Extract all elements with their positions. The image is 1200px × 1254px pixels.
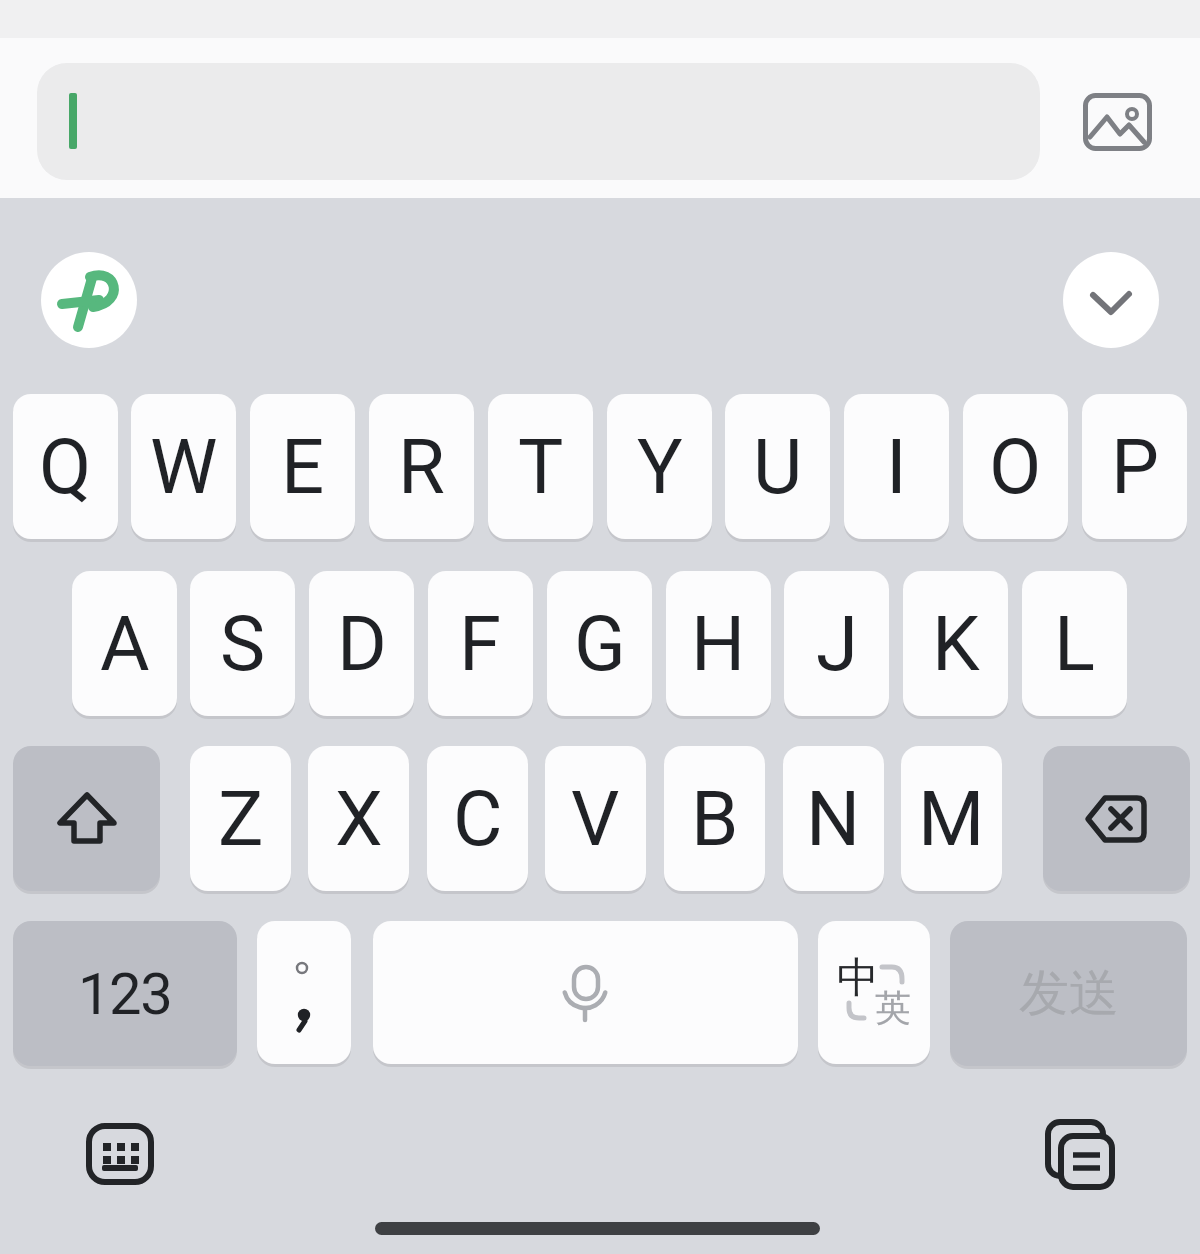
staticText: R [398,422,445,511]
staticText: 123 [78,960,172,1028]
staticText: E [281,422,325,511]
button[interactable]: 发送 [950,921,1187,1066]
staticText: F [459,599,502,688]
button[interactable]: Y [607,394,712,539]
staticText: A [100,599,150,688]
staticText: C [453,774,503,863]
button[interactable] [1044,1118,1116,1190]
button[interactable]: F [428,571,533,716]
button[interactable] [86,1123,154,1185]
button[interactable] [373,921,798,1064]
staticText: T [518,422,564,511]
staticText: U [753,422,803,511]
button[interactable]: H [666,571,771,716]
button[interactable]: K [903,571,1008,716]
staticText: W [150,422,218,511]
staticText: P [1111,422,1159,511]
button[interactable]: N [783,746,884,891]
staticText: I [886,422,907,511]
staticText: K [932,599,980,688]
staticText: H [691,599,746,688]
staticText: Y [637,422,683,511]
button[interactable]: C [427,746,528,891]
button[interactable]: B [664,746,765,891]
button[interactable] [41,252,137,348]
button[interactable] [257,921,351,1064]
staticText: 发送 [1019,962,1119,1025]
button[interactable]: P [1082,394,1187,539]
button[interactable] [1063,252,1159,348]
button[interactable]: V [545,746,646,891]
staticText: G [574,599,626,688]
staticText: V [571,774,620,863]
button[interactable] [1083,93,1153,153]
button[interactable]: Z [190,746,291,891]
staticText: Z [218,774,264,863]
staticText: B [691,774,739,863]
button[interactable]: R [369,394,474,539]
button[interactable]: W [131,394,236,539]
button[interactable]: O [963,394,1068,539]
button[interactable]: 123 [13,921,237,1066]
button[interactable]: S [190,571,295,716]
button[interactable]: E [250,394,355,539]
button[interactable] [1043,746,1190,891]
staticText: 英 [875,985,911,1030]
button[interactable] [13,746,160,891]
button[interactable] [37,63,1040,180]
button[interactable]: G [547,571,652,716]
button[interactable]: U [725,394,830,539]
staticText: J [816,599,858,688]
button[interactable]: J [784,571,889,716]
button[interactable]: I [844,394,949,539]
button[interactable]: Q [13,394,118,539]
button[interactable]: M [901,746,1002,891]
button[interactable]: X [308,746,409,891]
staticText: 中 [837,952,879,1005]
staticText: M [918,774,985,863]
staticText: X [335,774,383,863]
staticText: Q [39,422,92,511]
staticText: O [989,422,1042,511]
button[interactable]: L [1022,571,1127,716]
button[interactable]: T [488,394,593,539]
staticText: S [220,599,266,688]
staticText: L [1054,599,1095,688]
button[interactable]: 中 [818,921,930,1064]
button[interactable]: A [72,571,177,716]
staticText: N [806,774,861,863]
staticText: D [337,599,387,688]
button[interactable]: D [309,571,414,716]
